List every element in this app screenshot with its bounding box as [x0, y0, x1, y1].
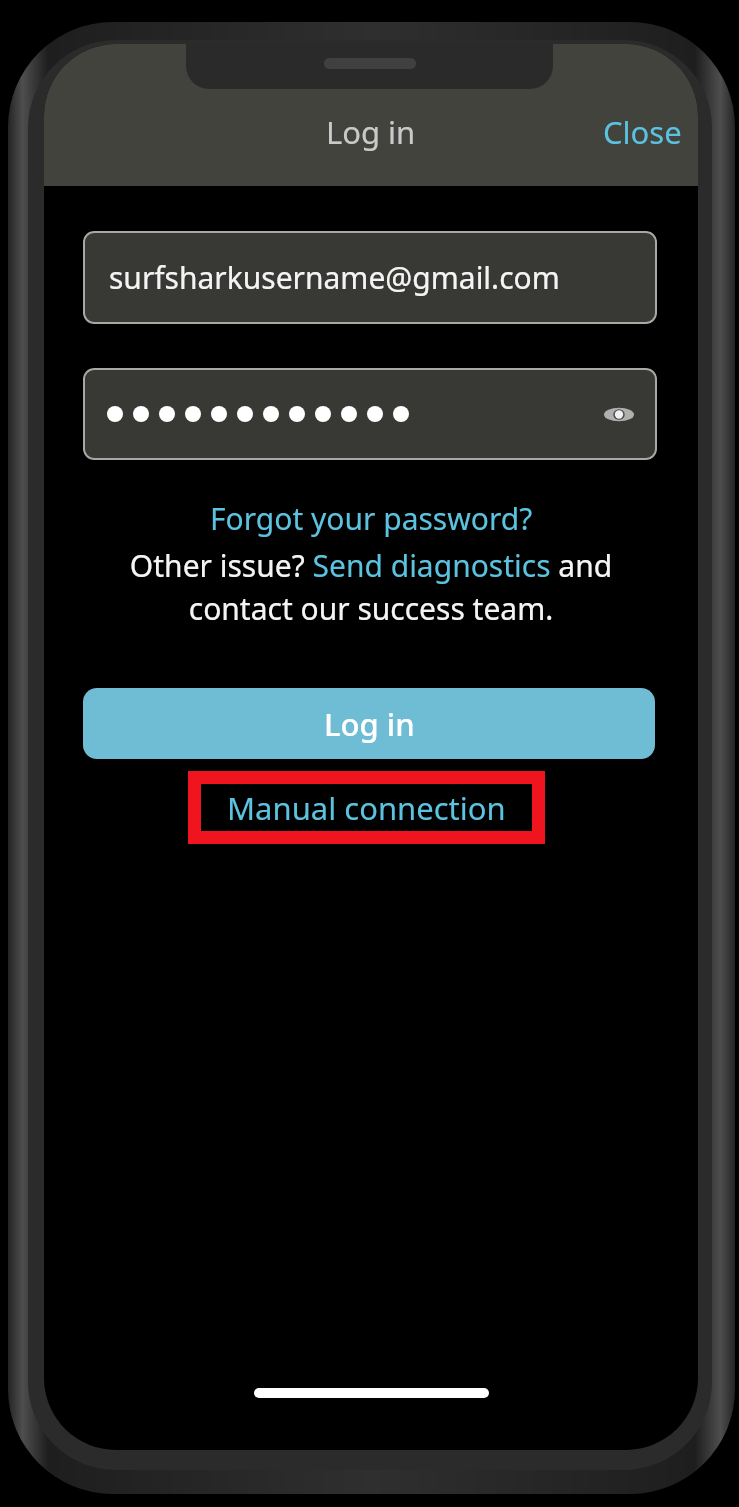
staticText: Close	[603, 111, 682, 153]
button[interactable]: Manual connection	[201, 784, 532, 831]
button[interactable]: Show password	[83, 368, 657, 460]
staticText: Log in	[324, 703, 415, 745]
button[interactable]: surfsharkusername@gmail.com	[83, 231, 657, 324]
button[interactable]: Other issue? Send diagnostics and contac…	[44, 545, 698, 629]
button[interactable]: Forgot your password?	[190, 490, 553, 547]
staticText: Manual connection	[227, 787, 506, 829]
staticText: Other issue? Send diagnostics and contac…	[86, 545, 656, 629]
button[interactable]: Log in	[83, 688, 655, 759]
staticText: Log in	[326, 111, 416, 153]
button[interactable]: Close	[587, 101, 698, 163]
staticText: surfsharkusername@gmail.com	[109, 257, 560, 298]
staticText: Forgot your password?	[210, 498, 533, 539]
button[interactable]: Show password	[595, 390, 643, 438]
